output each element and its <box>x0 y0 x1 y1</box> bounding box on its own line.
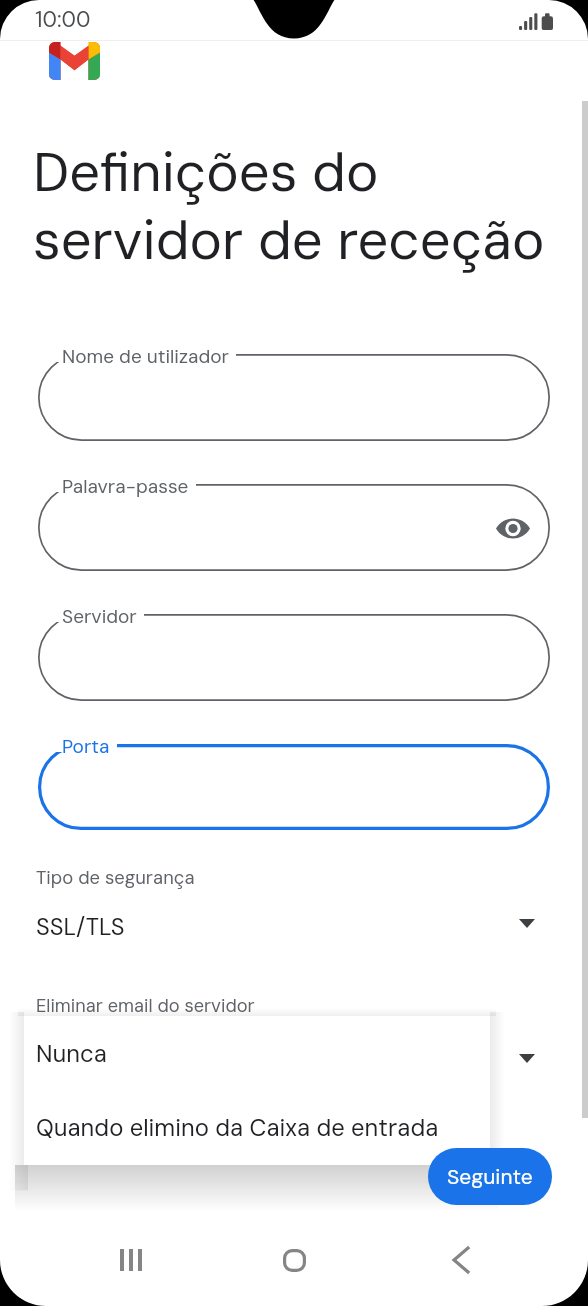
button[interactable] <box>38 614 550 701</box>
button[interactable]: Recentes <box>95 1214 167 1306</box>
button[interactable]: Voltar <box>425 1214 497 1306</box>
staticText: Nome de utilizador <box>62 344 229 369</box>
staticText: Eliminar email do servidor <box>36 994 255 1018</box>
button[interactable] <box>38 354 550 441</box>
button[interactable]: Quando elimino da Caixa de entrada <box>24 1090 490 1165</box>
button[interactable]: Mostrar palavra-passe <box>38 484 550 571</box>
button[interactable]: Eliminar email do servidor <box>0 992 588 1090</box>
button[interactable]: Nunca <box>24 1016 490 1090</box>
staticText: Seguinte <box>447 1163 533 1190</box>
staticText: Porta <box>62 734 110 759</box>
staticText: Tipo de segurança <box>36 866 195 890</box>
button[interactable] <box>38 744 550 830</box>
staticText: 10:00 <box>35 5 91 34</box>
staticText: Palavra-passe <box>62 474 189 499</box>
button[interactable]: Seguinte <box>428 1148 552 1205</box>
button[interactable]: Tipo de segurança <box>0 856 588 954</box>
staticText: Servidor <box>62 604 137 629</box>
staticText: Nunca <box>36 1038 107 1069</box>
button[interactable]: Mostrar palavra-passe <box>489 504 537 552</box>
button[interactable]: Abrir lista <box>512 1043 542 1073</box>
button[interactable]: Abrir lista <box>512 908 542 938</box>
staticText: SSL/TLS <box>36 912 125 943</box>
button[interactable]: Início <box>258 1214 330 1306</box>
staticText: Definições do servidor de receção <box>33 137 588 276</box>
staticText: Quando elimino da Caixa de entrada <box>36 1112 439 1143</box>
